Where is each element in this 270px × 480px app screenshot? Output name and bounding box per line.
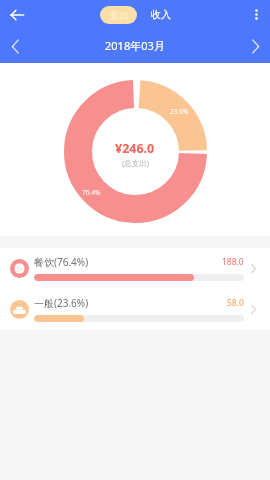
button[interactable]: More options: [244, 2, 269, 27]
staticText: 收入: [151, 8, 171, 21]
staticText: 76.4%: [82, 188, 101, 197]
staticText: 餐饮(76.4%): [34, 255, 89, 269]
button[interactable]: 收入: [150, 5, 172, 24]
staticText: ¥246.0: [115, 140, 155, 157]
staticText: 支出: [109, 9, 129, 22]
button[interactable]: Previous month: [1, 32, 29, 60]
button[interactable]: 餐饮(76.4%): [0, 248, 270, 289]
button[interactable]: 支出: [100, 6, 137, 24]
staticText: 2018年03月: [105, 38, 165, 53]
staticText: 23.6%: [170, 107, 189, 116]
staticText: (总支出): [122, 158, 149, 168]
staticText: 58.0: [227, 297, 244, 309]
staticText: 188.0: [222, 256, 244, 268]
button[interactable]: 一般(23.6%): [0, 289, 270, 330]
button[interactable]: Next month: [241, 32, 269, 60]
staticText: 一般(23.6%): [34, 296, 89, 310]
button[interactable]: Back: [3, 1, 30, 28]
